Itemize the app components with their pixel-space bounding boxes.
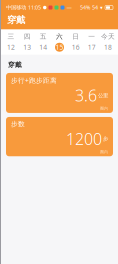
staticText: 17 bbox=[88, 43, 96, 52]
staticText: 步数 bbox=[11, 120, 25, 128]
button[interactable]: 一 bbox=[84, 29, 100, 55]
button[interactable]: 今天 bbox=[100, 29, 116, 55]
staticText: 四 bbox=[24, 32, 31, 41]
staticText: 六 bbox=[56, 32, 63, 41]
staticText: 16 bbox=[72, 43, 80, 52]
staticText: 步 bbox=[103, 135, 108, 142]
staticText: 15 bbox=[55, 43, 63, 52]
staticText: 穿戴 bbox=[7, 14, 25, 26]
staticText: 公里 bbox=[98, 92, 108, 99]
staticText: — bbox=[66, 4, 71, 11]
button[interactable]: 四 bbox=[19, 29, 35, 55]
button[interactable]: 五 bbox=[35, 29, 51, 55]
staticText: 中国移动 bbox=[6, 4, 26, 11]
button[interactable]: 日 bbox=[68, 29, 84, 55]
staticText: 12 bbox=[7, 43, 15, 52]
staticText: 18 bbox=[104, 43, 112, 52]
staticText: 穿戴 bbox=[8, 61, 22, 69]
button[interactable]: 六 bbox=[51, 29, 67, 55]
staticText: 圈内 bbox=[100, 149, 108, 154]
button[interactable]: 步行+跑步距离 bbox=[6, 73, 113, 113]
staticText: 54% bbox=[80, 4, 90, 11]
staticText: 日 bbox=[72, 32, 79, 41]
staticText: 1200 bbox=[66, 128, 102, 149]
staticText: 一 bbox=[88, 32, 95, 41]
staticText: 54 bbox=[92, 4, 98, 11]
staticText: 圈内 bbox=[100, 106, 108, 111]
staticText: 11:05 bbox=[28, 4, 41, 11]
staticText: 步行+跑步距离 bbox=[11, 76, 57, 85]
staticText: 三 bbox=[8, 32, 15, 41]
button[interactable]: 三 bbox=[3, 29, 19, 55]
staticText: 13 bbox=[23, 43, 31, 52]
staticText: 3.6 bbox=[75, 85, 97, 106]
staticText: 五 bbox=[40, 32, 47, 41]
staticText: 14 bbox=[39, 43, 47, 52]
button[interactable]: 步数 bbox=[6, 117, 113, 156]
staticText: 今天 bbox=[101, 32, 115, 41]
staticText: ▾ bbox=[100, 4, 103, 11]
